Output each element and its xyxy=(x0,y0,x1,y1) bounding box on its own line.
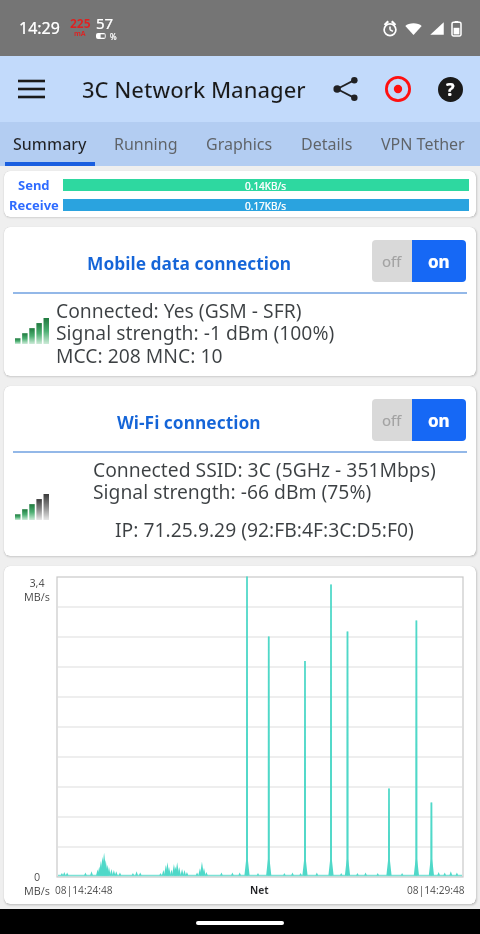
staticText: VPN Tether xyxy=(381,133,465,155)
button[interactable]: VPN Tether xyxy=(367,122,479,166)
button[interactable]: Summary xyxy=(0,122,100,166)
staticText: 57 xyxy=(96,13,114,33)
button[interactable]: Graphics xyxy=(192,122,287,166)
staticText: Details xyxy=(301,133,353,155)
staticText: off xyxy=(382,251,402,271)
staticText: Wi-Fi connection xyxy=(117,410,261,434)
button[interactable]: Help xyxy=(424,63,476,115)
staticText: off xyxy=(382,410,402,430)
staticText: 08|14:29:48 xyxy=(407,883,465,897)
staticText: on xyxy=(428,250,450,273)
staticText: Running xyxy=(114,133,178,155)
staticText: % xyxy=(110,31,117,42)
staticText: 14:29 xyxy=(19,17,60,39)
staticText: Receive xyxy=(9,196,59,213)
staticText: Mobile data connection xyxy=(87,251,292,275)
button[interactable]: Running xyxy=(100,122,192,166)
button[interactable]: off xyxy=(372,399,412,441)
staticText: 3,4 MB/s xyxy=(4,575,70,604)
staticText: Connected: Yes (GSM - SFR) Signal streng… xyxy=(56,297,335,368)
button[interactable]: Record xyxy=(372,63,424,115)
staticText: 225 xyxy=(70,15,91,31)
staticText: 0.17KB/s xyxy=(245,199,287,211)
button[interactable]: Details xyxy=(287,122,367,166)
staticText: 0.14KB/s xyxy=(245,179,287,191)
button[interactable]: Menu xyxy=(0,58,62,120)
staticText: ? xyxy=(446,77,455,102)
staticText: IP: 71.25.9.29 (92:FB:4F:3C:D5:F0) xyxy=(115,516,414,542)
staticText: 3C Network Manager xyxy=(82,74,306,104)
staticText: Net xyxy=(250,883,269,897)
button[interactable]: off xyxy=(372,240,412,282)
button[interactable]: on xyxy=(412,240,466,282)
button[interactable]: Share xyxy=(320,63,372,115)
staticText: Graphics xyxy=(206,133,273,155)
staticText: 08|14:24:48 xyxy=(55,883,113,897)
staticText: Send xyxy=(18,176,50,193)
button[interactable]: on xyxy=(412,399,466,441)
staticText: on xyxy=(428,409,450,432)
staticText: Summary xyxy=(13,133,87,155)
staticText: mA xyxy=(74,29,86,39)
staticText: 0 MB/s xyxy=(4,869,70,898)
staticText: Connected SSID: 3C (5GHz - 351Mbps) Sign… xyxy=(93,456,436,504)
